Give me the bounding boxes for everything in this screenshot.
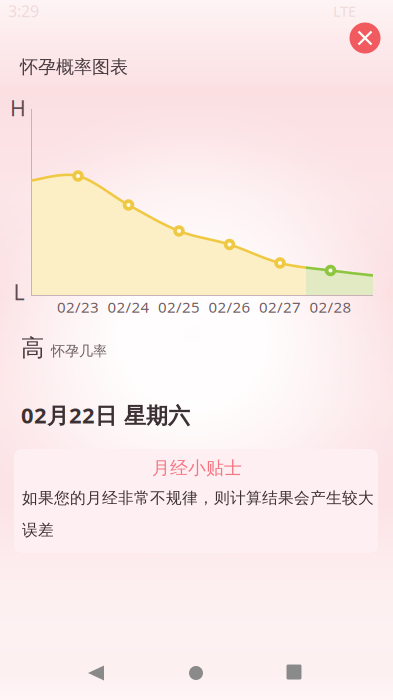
staticText: 02/24 <box>107 297 149 317</box>
staticText: 怀孕几率 <box>51 342 107 360</box>
staticText: 02/27 <box>259 297 301 317</box>
staticText: 误差 <box>22 520 54 540</box>
staticText: 高 <box>21 333 44 363</box>
staticText: L <box>13 277 24 307</box>
staticText: 02/23 <box>57 297 99 317</box>
staticText: 02/26 <box>208 297 250 317</box>
button[interactable]: Close <box>345 18 385 58</box>
button[interactable]: Home <box>164 650 228 696</box>
staticText: 如果您的月经非常不规律，则计算结果会产生较大 <box>22 488 374 508</box>
staticText: 02月22日 星期六 <box>21 400 190 430</box>
staticText: 02/28 <box>309 297 351 317</box>
staticText: 02/25 <box>158 297 200 317</box>
staticText: 3:29 <box>8 0 39 22</box>
staticText: 怀孕概率图表 <box>20 56 128 78</box>
staticText: 月经小贴士 <box>152 457 242 479</box>
staticText: LTE <box>333 1 356 21</box>
button[interactable]: Back <box>64 650 128 696</box>
button[interactable]: Recent apps <box>262 649 326 695</box>
staticText: H <box>10 93 26 123</box>
